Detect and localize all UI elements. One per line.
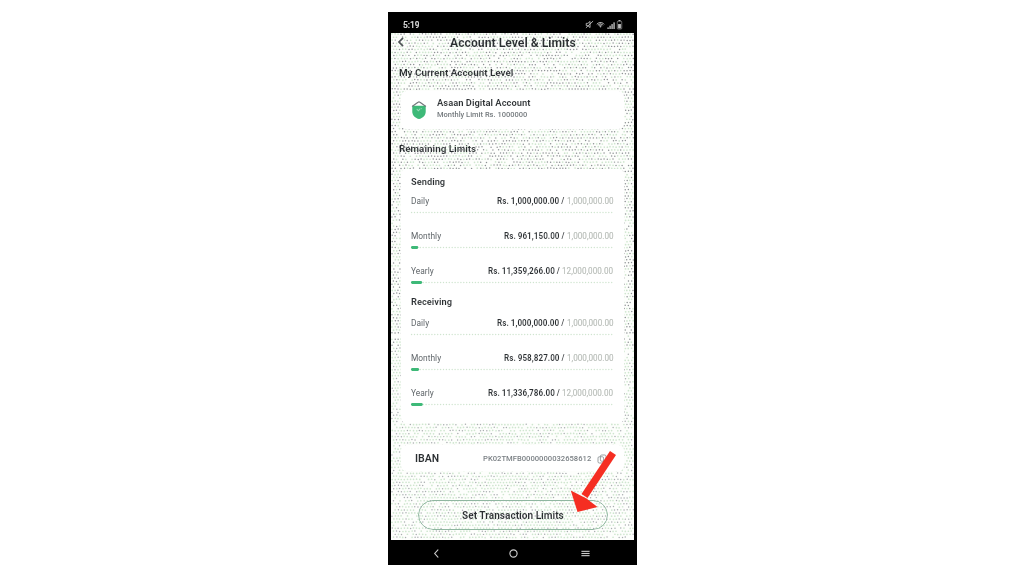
staticText: Rs. 961,150.00 / bbox=[504, 231, 565, 241]
staticText: Asaan Digital Account bbox=[437, 97, 531, 108]
staticText: Daily bbox=[411, 196, 430, 206]
staticText: Daily bbox=[411, 318, 430, 328]
staticText: Rs. 1,000,000.00 / bbox=[497, 196, 565, 206]
staticText: 1,000,000.00 bbox=[567, 196, 614, 206]
staticText: 12,000,000.00 bbox=[562, 388, 614, 398]
staticText: Receiving bbox=[411, 296, 452, 307]
staticText: Rs. 958,827.00 / bbox=[504, 353, 565, 363]
button[interactable]: Back bbox=[426, 543, 446, 563]
staticText: Set Transaction Limits bbox=[462, 510, 564, 522]
button[interactable]: Recent apps bbox=[575, 543, 595, 563]
staticText: Account Level & Limits bbox=[450, 36, 576, 50]
staticText: 1,000,000.00 bbox=[567, 318, 614, 328]
button[interactable]: Home bbox=[503, 543, 523, 563]
staticText: Rs. 11,336,786.00 / bbox=[488, 388, 560, 398]
staticText: Monthly bbox=[411, 353, 442, 363]
staticText: Monthly Limit Rs. 1000000 bbox=[437, 110, 528, 119]
staticText: 12,000,000.00 bbox=[562, 266, 614, 276]
staticText: Rs. 11,359,266.00 / bbox=[488, 266, 560, 276]
staticText: Monthly bbox=[411, 231, 442, 241]
staticText: Rs. 1,000,000.00 / bbox=[497, 318, 565, 328]
button[interactable]: Asaan Digital Account bbox=[401, 91, 624, 129]
staticText: Yearly bbox=[411, 388, 434, 398]
staticText: Yearly bbox=[411, 266, 434, 276]
button[interactable]: Back bbox=[392, 33, 410, 51]
staticText: My Current Account Level bbox=[399, 67, 514, 79]
staticText: Remaining Limits bbox=[399, 143, 477, 155]
staticText: PK02TMFB0000000032658612 bbox=[483, 454, 592, 463]
staticText: Sending bbox=[411, 176, 446, 187]
staticText: 5:19 bbox=[403, 20, 420, 30]
button[interactable]: Copy IBAN bbox=[595, 452, 608, 465]
staticText: 1,000,000.00 bbox=[567, 353, 614, 363]
button[interactable]: Set Transaction Limits bbox=[418, 500, 608, 530]
staticText: 1,000,000.00 bbox=[567, 231, 614, 241]
button[interactable]: IBAN bbox=[401, 445, 624, 471]
staticText: IBAN bbox=[415, 452, 440, 464]
